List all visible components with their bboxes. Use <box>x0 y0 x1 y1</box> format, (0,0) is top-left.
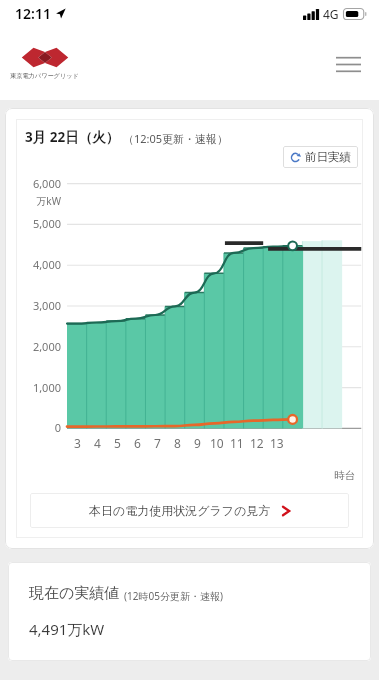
button[interactable]: 前日実績 <box>283 146 358 168</box>
staticText: 3月 22日（火） <box>25 128 120 146</box>
staticText: 6 <box>134 435 141 451</box>
staticText: 4G <box>323 6 339 22</box>
staticText: 3 <box>74 435 81 451</box>
staticText: 前日実績 <box>305 150 351 164</box>
staticText: 現在の実績値 <box>29 584 120 603</box>
staticText: 11 <box>230 435 244 451</box>
button[interactable]: 本日の電力使用状況グラフの見方 <box>30 493 349 528</box>
staticText: 本日の電力使用状況グラフの見方 <box>89 503 271 518</box>
staticText: 東京電力パワーグリッド <box>10 72 79 80</box>
staticText: 3,000 <box>32 298 61 313</box>
staticText: 5 <box>114 435 121 451</box>
staticText: 8 <box>174 435 181 451</box>
staticText: 5,000 <box>32 216 61 231</box>
staticText: 4,000 <box>32 257 61 272</box>
staticText: 1,000 <box>32 380 61 395</box>
staticText: 6,000 <box>32 176 61 191</box>
staticText: 万kW <box>36 194 61 208</box>
staticText: （12:05更新・速報） <box>123 131 229 146</box>
button[interactable]: Menu <box>325 41 371 87</box>
staticText: 10 <box>210 435 224 451</box>
staticText: 0 <box>54 420 61 435</box>
staticText: 4,491万kW <box>29 619 105 639</box>
staticText: 13 <box>270 435 284 451</box>
staticText: 時台 <box>334 469 355 482</box>
staticText: 7 <box>154 435 161 451</box>
staticText: 12:11 <box>15 4 51 23</box>
staticText: 12 <box>250 435 264 451</box>
staticText: (12時05分更新・速報) <box>124 589 223 603</box>
staticText: 2,000 <box>32 339 61 354</box>
staticText: 9 <box>194 435 201 451</box>
staticText: 4 <box>94 435 101 451</box>
